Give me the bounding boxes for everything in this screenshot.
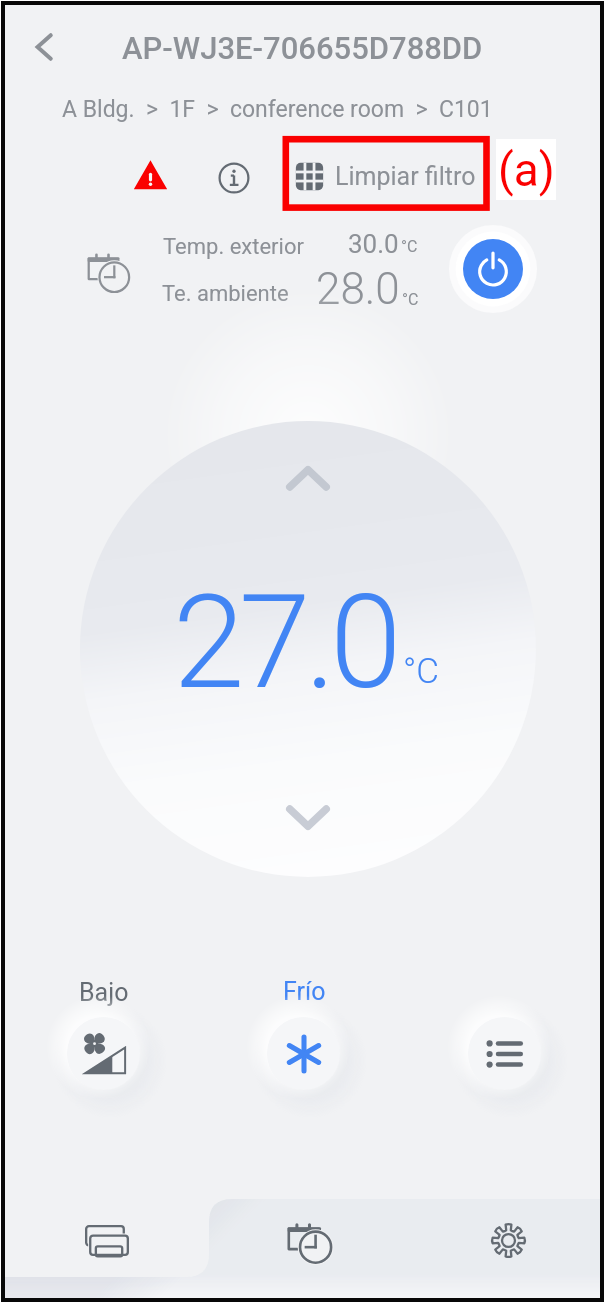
staticText: Frío	[283, 977, 326, 1006]
staticText: Limpiar filtro	[335, 162, 476, 191]
button[interactable]: Warning	[126, 152, 174, 200]
staticText: °C	[402, 290, 419, 309]
button[interactable]: Fan speed	[67, 1017, 140, 1090]
staticText: A Bldg. > 1F > conference room > C101	[62, 96, 493, 123]
staticText: AP-WJ3E-706655D788DD	[122, 30, 483, 66]
staticText: Bajo	[79, 978, 129, 1007]
staticText: °C	[403, 651, 439, 692]
button[interactable]: Air conditioner	[5, 1197, 209, 1283]
button[interactable]: Schedule	[209, 1197, 409, 1283]
staticText: 30.0	[348, 229, 399, 259]
staticText: Temp. exterior	[163, 234, 304, 260]
button[interactable]: Increase temperature	[276, 446, 340, 510]
staticText: 28.0	[316, 263, 400, 315]
button[interactable]: Back	[21, 23, 69, 71]
button[interactable]: Limpiar filtro	[295, 153, 476, 199]
staticText: °C	[401, 237, 418, 256]
staticText: 27.0	[173, 567, 397, 718]
button[interactable]: Mode	[267, 1017, 340, 1090]
staticText: (a)	[498, 143, 555, 197]
staticText: Te. ambiente	[162, 281, 289, 307]
button[interactable]: Information	[210, 154, 258, 202]
button[interactable]: Power	[463, 239, 523, 299]
button[interactable]: Decrease temperature	[276, 786, 340, 850]
button[interactable]: More options	[468, 1017, 541, 1090]
button[interactable]: Settings	[409, 1197, 607, 1283]
